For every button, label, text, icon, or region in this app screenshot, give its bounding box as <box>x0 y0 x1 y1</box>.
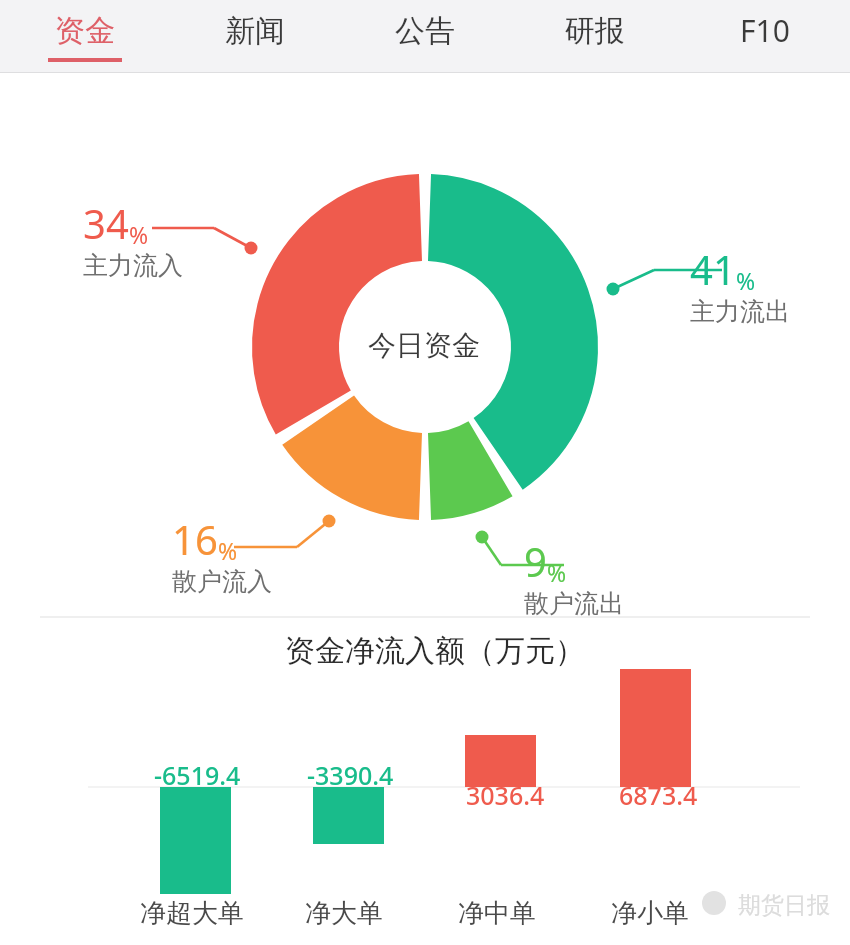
staticText: 3036.4 <box>466 778 545 812</box>
staticText: % <box>129 219 149 250</box>
staticText: 资金 <box>55 12 115 50</box>
staticText: 今日资金 <box>368 328 480 363</box>
button[interactable]: 新闻 <box>170 0 340 73</box>
staticText: 期货日报 <box>738 891 830 920</box>
staticText: -3390.4 <box>307 758 394 792</box>
staticText: % <box>736 265 756 296</box>
staticText: 6873.4 <box>619 778 698 812</box>
staticText: 公告 <box>395 12 455 50</box>
staticText: 净超大单 <box>140 897 244 930</box>
staticText: 散户流入 <box>172 566 272 597</box>
staticText: 净小单 <box>611 897 689 930</box>
button[interactable]: 41 <box>690 242 790 327</box>
button[interactable]: 16 <box>172 512 272 597</box>
button[interactable]: 34 <box>83 196 183 281</box>
staticText: -6519.4 <box>154 758 241 792</box>
staticText: 主力流入 <box>83 250 183 281</box>
button[interactable]: 公告 <box>340 0 510 73</box>
staticText: 净中单 <box>458 897 536 930</box>
staticText: 34 <box>83 196 129 250</box>
staticText: 新闻 <box>225 12 285 50</box>
staticText: F10 <box>740 10 790 51</box>
staticText: 研报 <box>565 12 625 50</box>
staticText: % <box>218 535 238 566</box>
staticText: % <box>547 557 567 588</box>
staticText: 散户流出 <box>524 588 624 619</box>
staticText: 主力流出 <box>690 296 790 327</box>
staticText: 9 <box>524 534 547 588</box>
button[interactable]: 资金 <box>0 0 170 73</box>
button[interactable]: 9 <box>524 534 624 619</box>
staticText: 资金净流入额（万元） <box>285 632 585 670</box>
button[interactable]: 研报 <box>510 0 680 73</box>
button[interactable]: F10 <box>680 0 850 73</box>
staticText: 净大单 <box>305 897 383 930</box>
staticText: 41 <box>690 242 736 296</box>
staticText: 16 <box>172 512 218 566</box>
